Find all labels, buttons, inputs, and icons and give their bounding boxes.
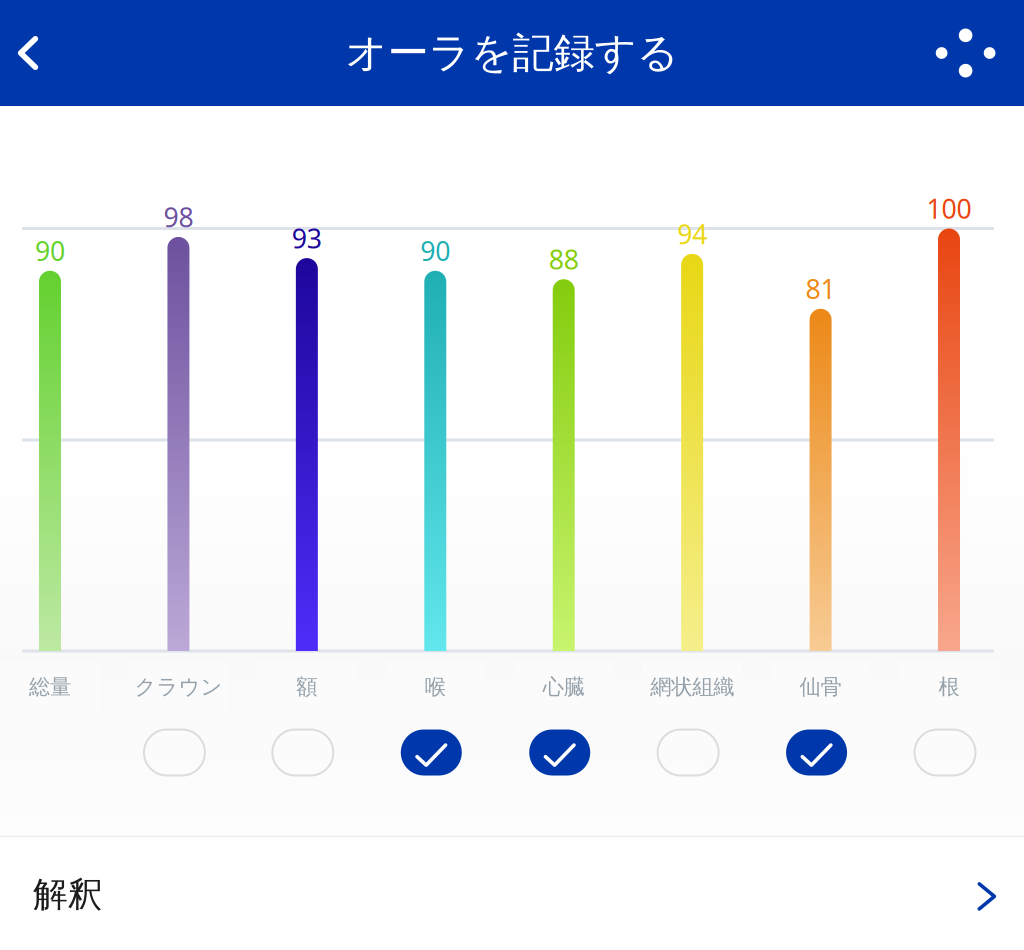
button[interactable]: 選択	[132, 720, 216, 784]
staticText: 額	[296, 674, 317, 700]
staticText: 喉	[425, 674, 446, 700]
button[interactable]: 選択	[775, 720, 859, 784]
staticText: オーラを記録する	[345, 28, 678, 78]
staticText: 解釈	[33, 873, 103, 916]
staticText: 心臓	[543, 674, 585, 700]
button[interactable]: メニュー	[920, 0, 1012, 106]
staticText: 根	[938, 674, 959, 700]
button[interactable]: 選択	[261, 720, 345, 784]
staticText: 総量	[29, 674, 71, 700]
staticText: 94	[677, 216, 707, 251]
staticText: 93	[292, 220, 322, 256]
button[interactable]: 選択	[646, 720, 730, 784]
button[interactable]: 選択	[903, 720, 987, 784]
staticText: 仙骨	[800, 674, 842, 700]
staticText: 網状組織	[650, 674, 734, 700]
staticText: 88	[549, 241, 579, 277]
staticText: 100	[926, 191, 971, 226]
staticText: 98	[163, 199, 193, 235]
button[interactable]: 選択	[518, 720, 602, 784]
staticText: クラウン	[134, 674, 222, 700]
staticText: 81	[806, 271, 836, 306]
staticText: 90	[35, 233, 65, 268]
button[interactable]: 解釈	[0, 837, 1024, 950]
button[interactable]: 選択	[389, 720, 473, 784]
button[interactable]: 戻る	[0, 0, 56, 106]
staticText: 90	[420, 233, 450, 268]
